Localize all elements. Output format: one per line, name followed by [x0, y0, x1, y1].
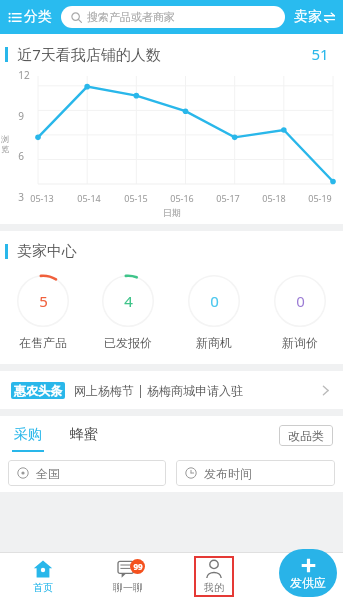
staticText: 我的	[204, 581, 224, 594]
button[interactable]: 搜索产品或者商家	[61, 6, 285, 28]
staticText: 已发报价	[104, 335, 152, 350]
staticText: 05-16	[170, 192, 194, 204]
staticText: 发布时间	[204, 466, 252, 481]
button[interactable]: 蜂蜜	[68, 426, 100, 444]
staticText: 首页	[33, 581, 53, 594]
staticText: 新商机	[196, 335, 232, 350]
staticText: 蜂蜜	[70, 426, 98, 444]
staticText: 12	[18, 68, 30, 82]
staticText: 05-14	[77, 192, 101, 204]
staticText: 发供应	[290, 575, 326, 590]
staticText: 05-18	[262, 192, 286, 204]
button[interactable]: 0	[257, 273, 343, 352]
staticText: 99	[133, 561, 143, 572]
staticText: 近7天看我店铺的人数	[17, 44, 161, 64]
button[interactable]: 全国	[8, 460, 166, 486]
staticText: 05-13	[30, 192, 54, 204]
button[interactable]: 卖家	[292, 8, 337, 26]
button[interactable]: 改品类	[279, 425, 333, 446]
button[interactable]: 首页	[0, 552, 85, 600]
staticText: 惠农头条	[14, 383, 62, 398]
staticText: 聊一聊	[113, 581, 143, 594]
staticText: 新询价	[282, 335, 318, 350]
staticText: 05-19	[308, 192, 332, 204]
button[interactable]: 4	[85, 273, 171, 352]
button[interactable]: 发布时间	[176, 460, 335, 486]
staticText: 4	[124, 291, 133, 311]
staticText: 分类	[24, 8, 52, 26]
staticText: 05-15	[124, 192, 148, 204]
staticText: 卖家中心	[17, 242, 77, 261]
staticText: 全国	[36, 466, 60, 481]
button[interactable]: 惠农头条	[0, 371, 343, 409]
staticText: 3	[18, 190, 24, 204]
staticText: 0	[296, 291, 305, 311]
other: Switch role	[324, 12, 335, 23]
staticText: 改品类	[288, 428, 324, 443]
staticText: 日期	[163, 207, 181, 218]
button[interactable]: 发供应	[279, 549, 337, 597]
staticText: 卖家	[294, 8, 322, 26]
staticText: 在售产品	[19, 335, 67, 350]
button[interactable]: 采购	[10, 416, 46, 454]
button[interactable]: 5	[0, 273, 85, 352]
other: More news	[319, 384, 332, 397]
staticText: 9	[18, 109, 24, 123]
staticText: 采购	[14, 426, 42, 444]
staticText: 5	[39, 291, 48, 311]
button[interactable]: 0	[171, 273, 257, 352]
button[interactable]: 我的	[171, 552, 257, 600]
staticText: 网上杨梅节 | 杨梅商城申请入驻	[74, 382, 243, 398]
staticText: 05-17	[216, 192, 240, 204]
staticText: 51	[311, 44, 329, 64]
button[interactable]: 分类	[6, 8, 54, 26]
staticText: 浏	[1, 134, 9, 144]
staticText: 0	[210, 291, 219, 311]
staticText: 6	[18, 149, 24, 163]
button[interactable]: 聊一聊	[85, 552, 171, 600]
staticText: 搜索产品或者商家	[87, 10, 175, 24]
staticText: 览	[1, 144, 9, 154]
